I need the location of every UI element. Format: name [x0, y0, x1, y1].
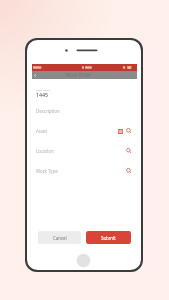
button[interactable]: Search: [126, 128, 132, 134]
button[interactable]: Work Type: [36, 168, 132, 174]
button[interactable]: Scan barcode: [118, 129, 123, 134]
button[interactable]: Submit: [86, 231, 131, 244]
button[interactable]: Cancel: [38, 231, 81, 244]
button[interactable]: Asset: [36, 128, 132, 134]
button[interactable]: Location: [36, 148, 132, 154]
button[interactable]: Search: [126, 148, 132, 154]
staticText: Work Order: [36, 88, 50, 91]
button[interactable]: Back: [33, 73, 38, 78]
staticText: Cancel: [53, 235, 67, 241]
staticText: Description: [36, 108, 132, 114]
staticText: 1445: [36, 91, 49, 98]
button[interactable]: Search: [126, 168, 132, 174]
staticText: Work Type: [36, 168, 126, 174]
staticText: Work Order: [66, 72, 92, 78]
staticText: Submit: [101, 235, 116, 241]
button[interactable]: Back: [32, 71, 137, 79]
staticText: Location: [36, 148, 126, 154]
staticText: Asset: [36, 128, 118, 134]
button[interactable]: Description: [36, 108, 132, 114]
